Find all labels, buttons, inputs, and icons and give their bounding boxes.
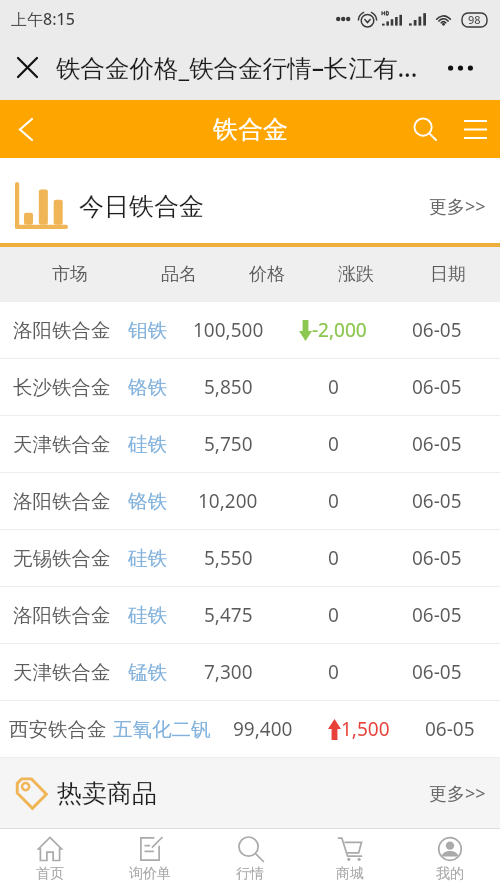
- staticText: 5,475: [204, 602, 253, 628]
- staticText: 更多>>: [429, 194, 486, 219]
- staticText: 铬铁: [128, 375, 167, 400]
- button[interactable]: Search: [400, 104, 450, 154]
- staticText: 铁合金: [213, 114, 288, 145]
- button[interactable]: 洛阳铁合金: [0, 302, 500, 358]
- staticText: 06-05: [412, 317, 462, 343]
- staticText: 天津铁合金: [13, 432, 111, 457]
- staticText: 锰铁: [128, 660, 167, 685]
- staticText: 商城: [336, 865, 364, 883]
- staticText: 06-05: [412, 374, 462, 400]
- staticText: 五氧化二钒: [113, 717, 211, 742]
- button[interactable]: 商城: [300, 837, 400, 883]
- staticText: 更多>>: [429, 781, 486, 806]
- staticText: 上午8:15: [11, 8, 75, 30]
- button[interactable]: 行情: [200, 837, 300, 883]
- staticText: 硅铁: [128, 432, 167, 457]
- button[interactable]: 洛阳铁合金: [0, 587, 500, 643]
- staticText: 100,500: [193, 317, 264, 343]
- staticText: 0: [328, 431, 339, 457]
- button[interactable]: 今日铁合金: [0, 158, 500, 243]
- staticText: 0: [328, 602, 339, 628]
- staticText: 06-05: [412, 431, 462, 457]
- button[interactable]: 无锡铁合金: [0, 530, 500, 586]
- staticText: 市场: [52, 263, 88, 286]
- button[interactable]: 我的: [400, 837, 500, 883]
- staticText: 询价单: [129, 865, 171, 883]
- staticText: 洛阳铁合金: [13, 603, 111, 628]
- staticText: 西安铁合金: [9, 717, 107, 742]
- staticText: 洛阳铁合金: [13, 489, 111, 514]
- staticText: 98: [468, 12, 481, 27]
- staticText: 洛阳铁合金: [13, 318, 111, 343]
- staticText: 涨跌: [338, 263, 374, 286]
- staticText: 0: [328, 545, 339, 571]
- staticText: 铁合金价格_铁合金行情–长江有...: [56, 51, 418, 84]
- staticText: 5,750: [204, 431, 253, 457]
- staticText: 06-05: [412, 659, 462, 685]
- staticText: 长沙铁合金: [13, 375, 111, 400]
- staticText: 日期: [430, 263, 466, 286]
- button[interactable]: More options: [433, 40, 488, 95]
- staticText: 钼铁: [128, 318, 167, 343]
- staticText: 0: [328, 659, 339, 685]
- button[interactable]: Back: [0, 103, 52, 155]
- staticText: 06-05: [412, 545, 462, 571]
- staticText: 06-05: [412, 602, 462, 628]
- button[interactable]: 长沙铁合金: [0, 359, 500, 415]
- staticText: -2,000: [312, 317, 367, 343]
- button[interactable]: Menu: [450, 104, 500, 154]
- button[interactable]: 天津铁合金: [0, 644, 500, 700]
- staticText: 5,850: [204, 374, 253, 400]
- button[interactable]: 天津铁合金: [0, 416, 500, 472]
- button[interactable]: Close: [0, 40, 55, 95]
- button[interactable]: 西安铁合金: [0, 701, 500, 757]
- staticText: 行情: [236, 865, 264, 883]
- staticText: 5,550: [204, 545, 253, 571]
- button[interactable]: 询价单: [100, 837, 200, 883]
- staticText: 硅铁: [128, 546, 167, 571]
- staticText: 06-05: [425, 716, 475, 742]
- staticText: 价格: [249, 263, 285, 286]
- staticText: 7,300: [204, 659, 253, 685]
- staticText: 首页: [36, 865, 64, 883]
- staticText: 无锡铁合金: [13, 546, 111, 571]
- staticText: 品名: [161, 263, 197, 286]
- staticText: 0: [328, 488, 339, 514]
- staticText: 1,500: [341, 716, 390, 742]
- staticText: 天津铁合金: [13, 660, 111, 685]
- staticText: 99,400: [233, 716, 293, 742]
- staticText: 今日铁合金: [79, 191, 204, 222]
- staticText: 06-05: [412, 488, 462, 514]
- staticText: 热卖商品: [57, 778, 157, 809]
- button[interactable]: 洛阳铁合金: [0, 473, 500, 529]
- staticText: 铬铁: [128, 489, 167, 514]
- staticText: 硅铁: [128, 603, 167, 628]
- staticText: 10,200: [198, 488, 258, 514]
- staticText: 我的: [436, 865, 464, 883]
- button[interactable]: 热卖商品: [0, 758, 500, 828]
- staticText: 0: [328, 374, 339, 400]
- button[interactable]: 首页: [0, 837, 100, 883]
